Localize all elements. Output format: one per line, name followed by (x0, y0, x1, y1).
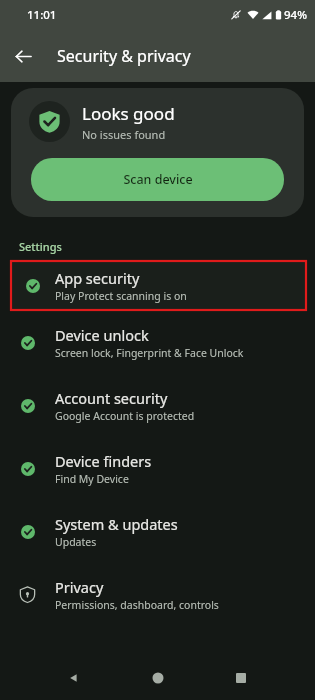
staticText: Google Account is protected (55, 409, 195, 423)
button[interactable]: Device unlock (0, 311, 315, 374)
button[interactable]: Recent apps (225, 662, 257, 694)
staticText: Security & privacy (57, 45, 191, 67)
button[interactable]: Scan device (31, 158, 284, 201)
staticText: Find My Device (55, 472, 129, 486)
staticText: Permissions, dashboard, controls (55, 598, 219, 612)
button[interactable]: Account security (0, 374, 315, 437)
staticText: Device unlock (55, 325, 149, 345)
staticText: Looks good (82, 102, 175, 125)
button[interactable]: Back (6, 39, 40, 73)
button[interactable]: Privacy (0, 563, 315, 626)
staticText: Settings (19, 239, 62, 254)
button[interactable]: Home (142, 662, 174, 694)
staticText: Scan device (123, 171, 193, 188)
staticText: Play Protect scanning is on (55, 289, 187, 303)
staticText: Account security (55, 388, 168, 408)
staticText: 11:01 (27, 7, 57, 23)
staticText: No issues found (82, 127, 166, 142)
staticText: App security (55, 268, 140, 288)
button[interactable]: System & updates (0, 500, 315, 563)
staticText: Updates (55, 535, 97, 549)
staticText: Device finders (55, 451, 152, 471)
staticText: System & updates (55, 514, 178, 534)
staticText: 94% (284, 7, 307, 23)
button[interactable]: App security (10, 260, 307, 311)
button[interactable]: Back (58, 662, 90, 694)
staticText: Privacy (55, 577, 104, 597)
staticText: Screen lock, Fingerprint & Face Unlock (55, 346, 244, 360)
button[interactable]: Device finders (0, 437, 315, 500)
